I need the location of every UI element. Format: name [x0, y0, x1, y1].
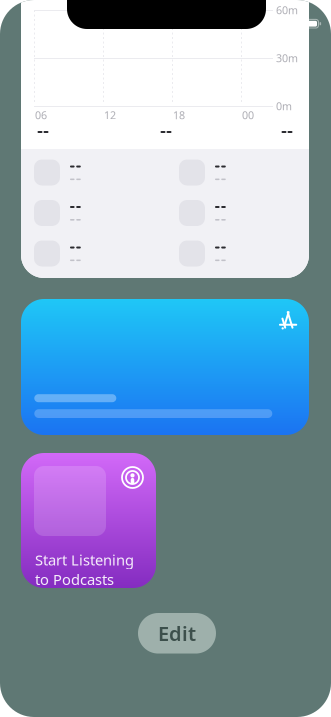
staticText: 60m — [276, 3, 298, 17]
staticText: 12 — [104, 108, 116, 122]
staticText: 30m — [276, 51, 298, 65]
staticText: 18 — [173, 108, 185, 122]
button[interactable]: Edit — [138, 613, 216, 654]
staticText: 0m — [276, 99, 292, 113]
staticText: 00 — [242, 108, 254, 122]
staticText: Start Listening to Podcasts — [35, 550, 134, 589]
staticText: 06 — [35, 108, 47, 122]
staticText: Edit — [158, 620, 196, 647]
